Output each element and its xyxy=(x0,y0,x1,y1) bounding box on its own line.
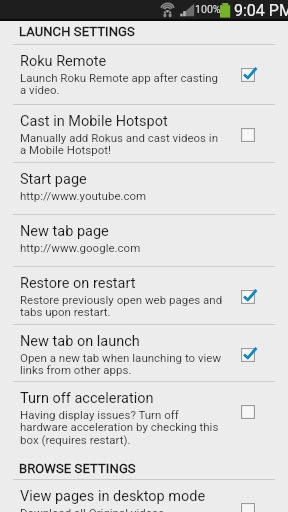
staticText: Cast in Mobile Hotspot xyxy=(20,113,168,130)
staticText: 100% xyxy=(195,3,221,15)
staticText: BROWSE SETTINGS xyxy=(19,461,136,476)
staticText: Manually add Rokus and cast videos in a … xyxy=(20,131,219,157)
staticText: Start page xyxy=(20,171,87,188)
staticText: View pages in desktop mode xyxy=(20,488,206,505)
staticText: LAUNCH SETTINGS xyxy=(19,24,135,39)
staticText: http://www.youtube.com xyxy=(20,189,147,202)
staticText: Open a new tab when launching to view li… xyxy=(20,351,222,377)
button[interactable]: Start page xyxy=(0,163,288,215)
button[interactable]: New tab on launch xyxy=(0,325,288,382)
staticText: New tab page xyxy=(20,223,109,240)
button[interactable]: Turn off acceleration xyxy=(0,382,288,452)
staticText: Roku Remote xyxy=(20,53,107,70)
staticText: Turn off acceleration xyxy=(20,390,154,407)
button[interactable]: New tab page xyxy=(0,215,288,267)
button[interactable]: Restore on restart xyxy=(0,267,288,325)
staticText: Restore on restart xyxy=(20,275,136,292)
staticText: New tab on launch xyxy=(20,333,140,350)
staticText: Launch Roku Remote app after casting a v… xyxy=(20,71,219,97)
button[interactable]: Roku Remote xyxy=(0,45,288,105)
button[interactable]: Cast in Mobile Hotspot xyxy=(0,105,288,163)
staticText: Download all Original videos xyxy=(20,506,165,512)
staticText: http://www.google.com xyxy=(20,241,141,254)
staticText: 9:04 PM xyxy=(234,1,288,20)
staticText: Having display issues? Turn off hardware… xyxy=(20,408,219,447)
button[interactable]: View pages in desktop mode xyxy=(0,480,288,512)
staticText: Restore previously open web pages and ta… xyxy=(20,293,223,319)
